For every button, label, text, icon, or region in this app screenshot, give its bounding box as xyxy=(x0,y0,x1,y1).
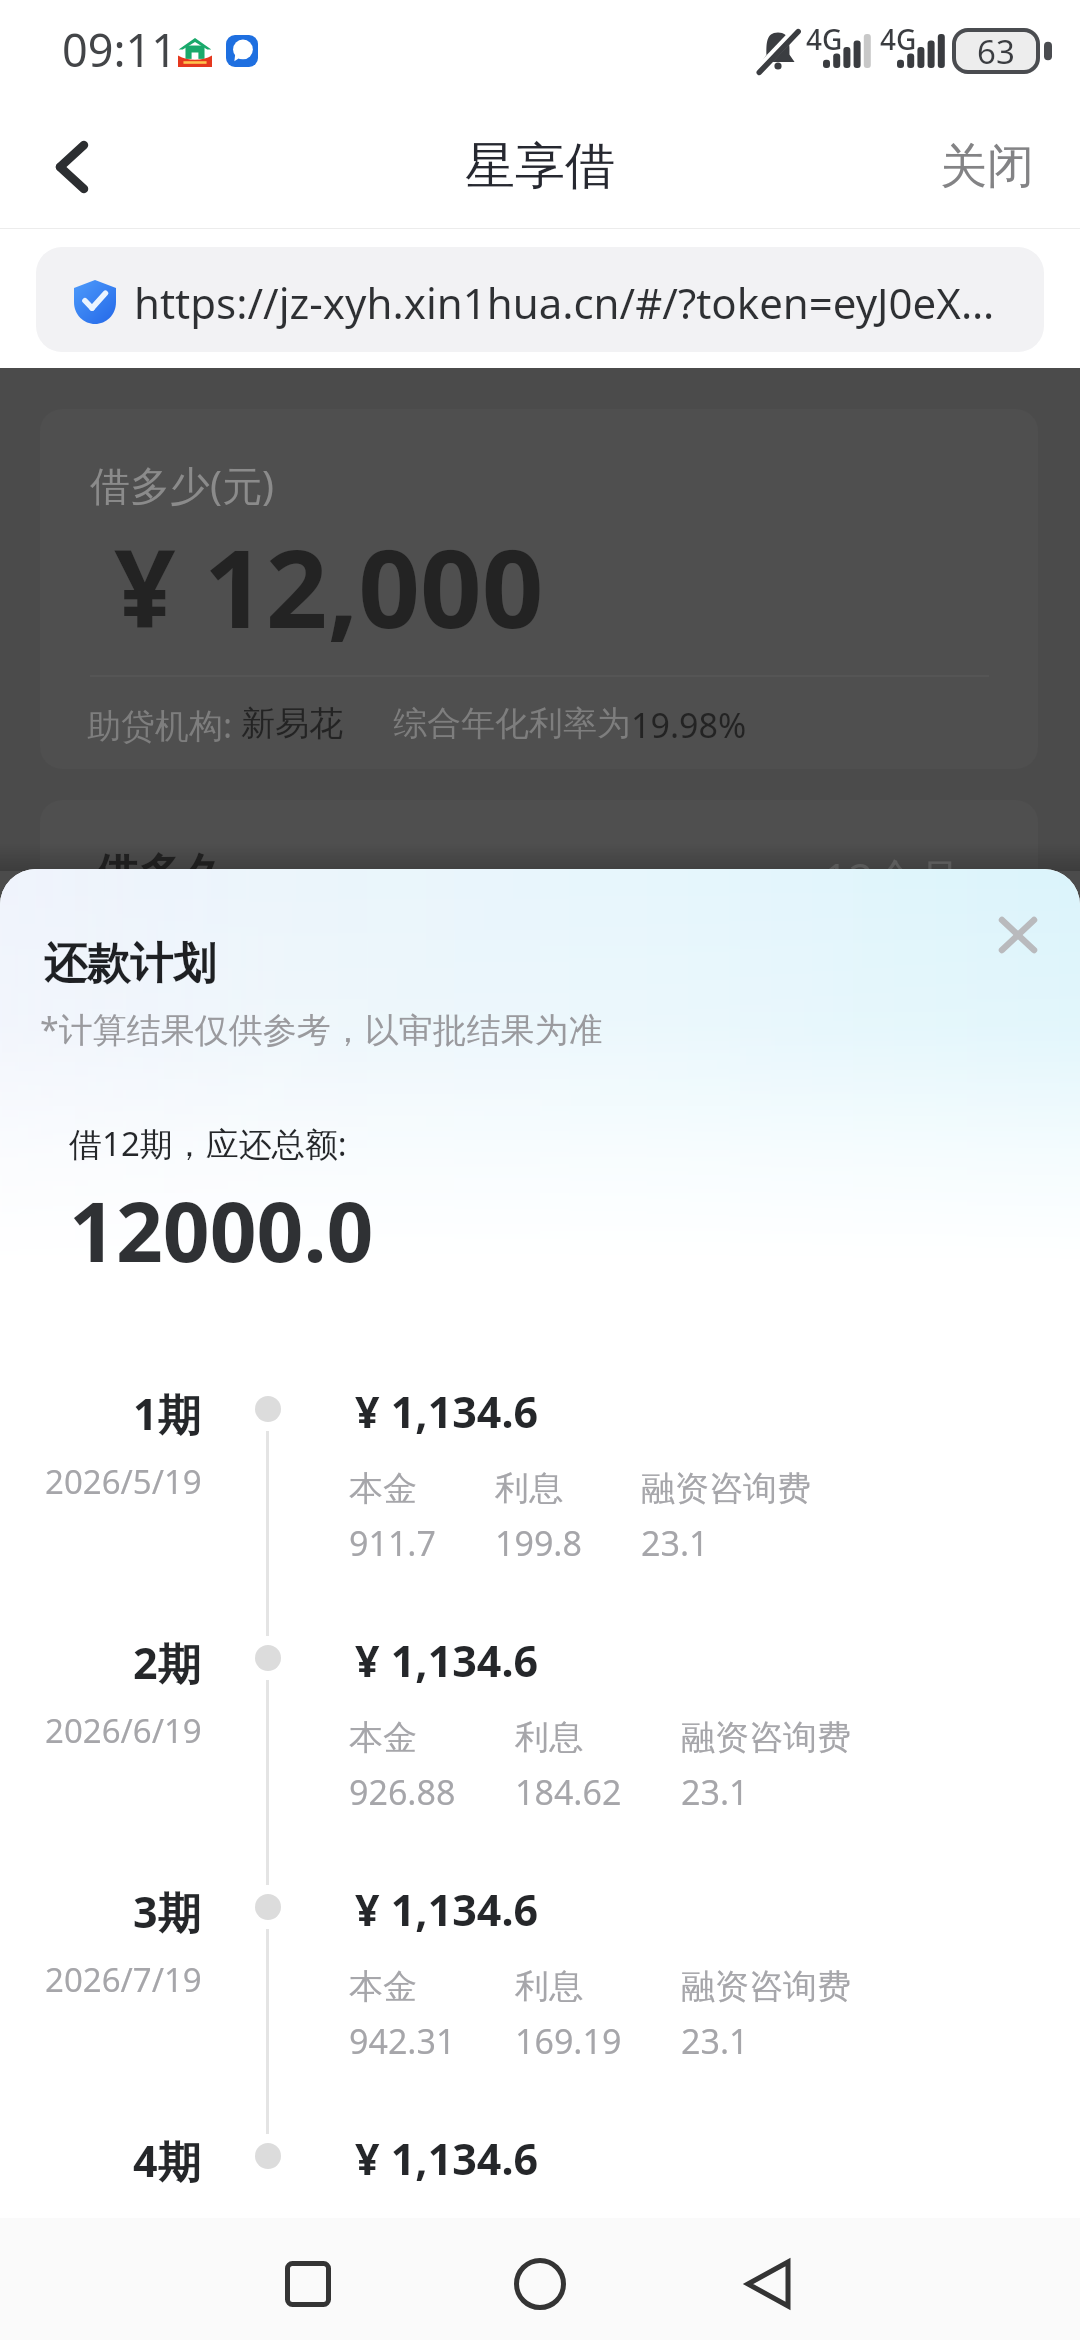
staticText: https://jz-xyh.xin1hua.cn/#/?token=eyJ0e… xyxy=(134,274,995,331)
button[interactable]: Back xyxy=(713,2229,823,2339)
button[interactable]: Home xyxy=(485,2229,595,2339)
staticText: 融资咨询费 xyxy=(681,1965,851,2008)
staticText: 借多少(元) xyxy=(90,457,274,512)
staticText: 2026/5/19 xyxy=(45,1459,202,1504)
staticText: 23.1 xyxy=(681,2018,749,2064)
staticText: 184.62 xyxy=(515,1769,622,1815)
staticText: 本金 xyxy=(349,1965,417,2008)
staticText: 关闭 xyxy=(940,137,1034,196)
staticText: 4G xyxy=(880,20,917,56)
staticText: ¥ 1,134.6 xyxy=(355,1631,539,1690)
staticText: 2026/7/19 xyxy=(45,1957,202,2002)
staticText: 借多久 xyxy=(94,848,226,903)
staticText: ¥ 12,000 xyxy=(114,513,544,660)
button[interactable]: Recent apps xyxy=(253,2229,363,2339)
button[interactable]: Back xyxy=(16,111,128,223)
staticText: 融资咨询费 xyxy=(681,1716,851,1759)
staticText: 169.19 xyxy=(515,2018,622,2064)
staticText: 利息 xyxy=(515,1965,583,2008)
staticText: 23.1 xyxy=(641,1520,709,1566)
staticText: 09:11 xyxy=(62,19,178,80)
staticText: ¥ 1,134.6 xyxy=(355,2129,539,2188)
staticText: 星享借 xyxy=(465,135,615,198)
staticText: 23.1 xyxy=(681,1769,749,1815)
staticText: 199.8 xyxy=(495,1520,582,1566)
staticText: 63 xyxy=(977,29,1015,74)
staticText: 2期 xyxy=(133,1633,201,1692)
staticText: 4G xyxy=(806,20,843,56)
staticText: 本金 xyxy=(349,1716,417,1759)
staticText: 还款计划 xyxy=(44,937,216,991)
staticText: 911.7 xyxy=(349,1520,436,1566)
staticText: 942.31 xyxy=(349,2018,456,2064)
button[interactable]: https://jz-xyh.xin1hua.cn/#/?token=eyJ0e… xyxy=(36,247,1044,352)
staticText: 本金 xyxy=(349,1467,417,1510)
staticText: ¥ 1,134.6 xyxy=(355,1382,539,1441)
staticText: 12个月 xyxy=(823,848,962,908)
staticText: 借12期，应还总额: xyxy=(69,1121,347,1166)
staticText: 利息 xyxy=(495,1467,563,1510)
staticText: 助贷机构: xyxy=(87,702,241,748)
staticText: 926.88 xyxy=(349,1769,456,1815)
staticText: 综合年化利率为 xyxy=(393,702,631,745)
staticText: 12000.0 xyxy=(69,1174,374,1286)
button[interactable] xyxy=(0,2118,1080,2178)
staticText: 4期 xyxy=(133,2131,201,2190)
staticText: 利息 xyxy=(515,1716,583,1759)
staticText: 融资咨询费 xyxy=(641,1467,811,1510)
button[interactable]: 关闭 xyxy=(912,116,1062,216)
button[interactable] xyxy=(0,1869,1080,2094)
staticText: 19.98% xyxy=(631,702,747,748)
staticText: 新易花 xyxy=(241,702,343,745)
button[interactable] xyxy=(0,1620,1080,1845)
button[interactable]: Close xyxy=(971,888,1065,982)
staticText: *计算结果仅供参考，以审批结果为准 xyxy=(40,1006,603,1052)
staticText: 2026/6/19 xyxy=(45,1708,202,1753)
staticText: ¥ 1,134.6 xyxy=(355,1880,539,1939)
staticText: 1期 xyxy=(133,1384,201,1443)
button[interactable] xyxy=(0,1371,1080,1596)
staticText: 3期 xyxy=(133,1882,201,1941)
